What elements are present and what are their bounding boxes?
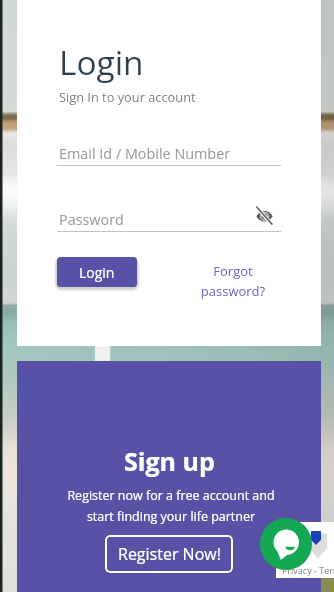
staticText: Forgot password? [189,262,277,300]
button[interactable]: Chat [260,518,312,570]
button[interactable]: Login [57,257,137,287]
staticText: Login [59,39,144,84]
staticText: Login [79,263,115,282]
button[interactable]: Forgot password? [189,262,277,300]
staticText: Password [59,210,124,230]
staticText: Privacy - Terms [282,564,334,576]
staticText: Register now for a free account and star… [41,487,301,525]
staticText: Register Now! [118,543,221,565]
staticText: Sign up [124,444,215,478]
staticText: Email Id / Mobile Number [59,144,231,164]
staticText: Sign In to your account [59,88,196,105]
button[interactable]: Show password [250,202,278,230]
button[interactable]: Register Now! [105,535,233,573]
